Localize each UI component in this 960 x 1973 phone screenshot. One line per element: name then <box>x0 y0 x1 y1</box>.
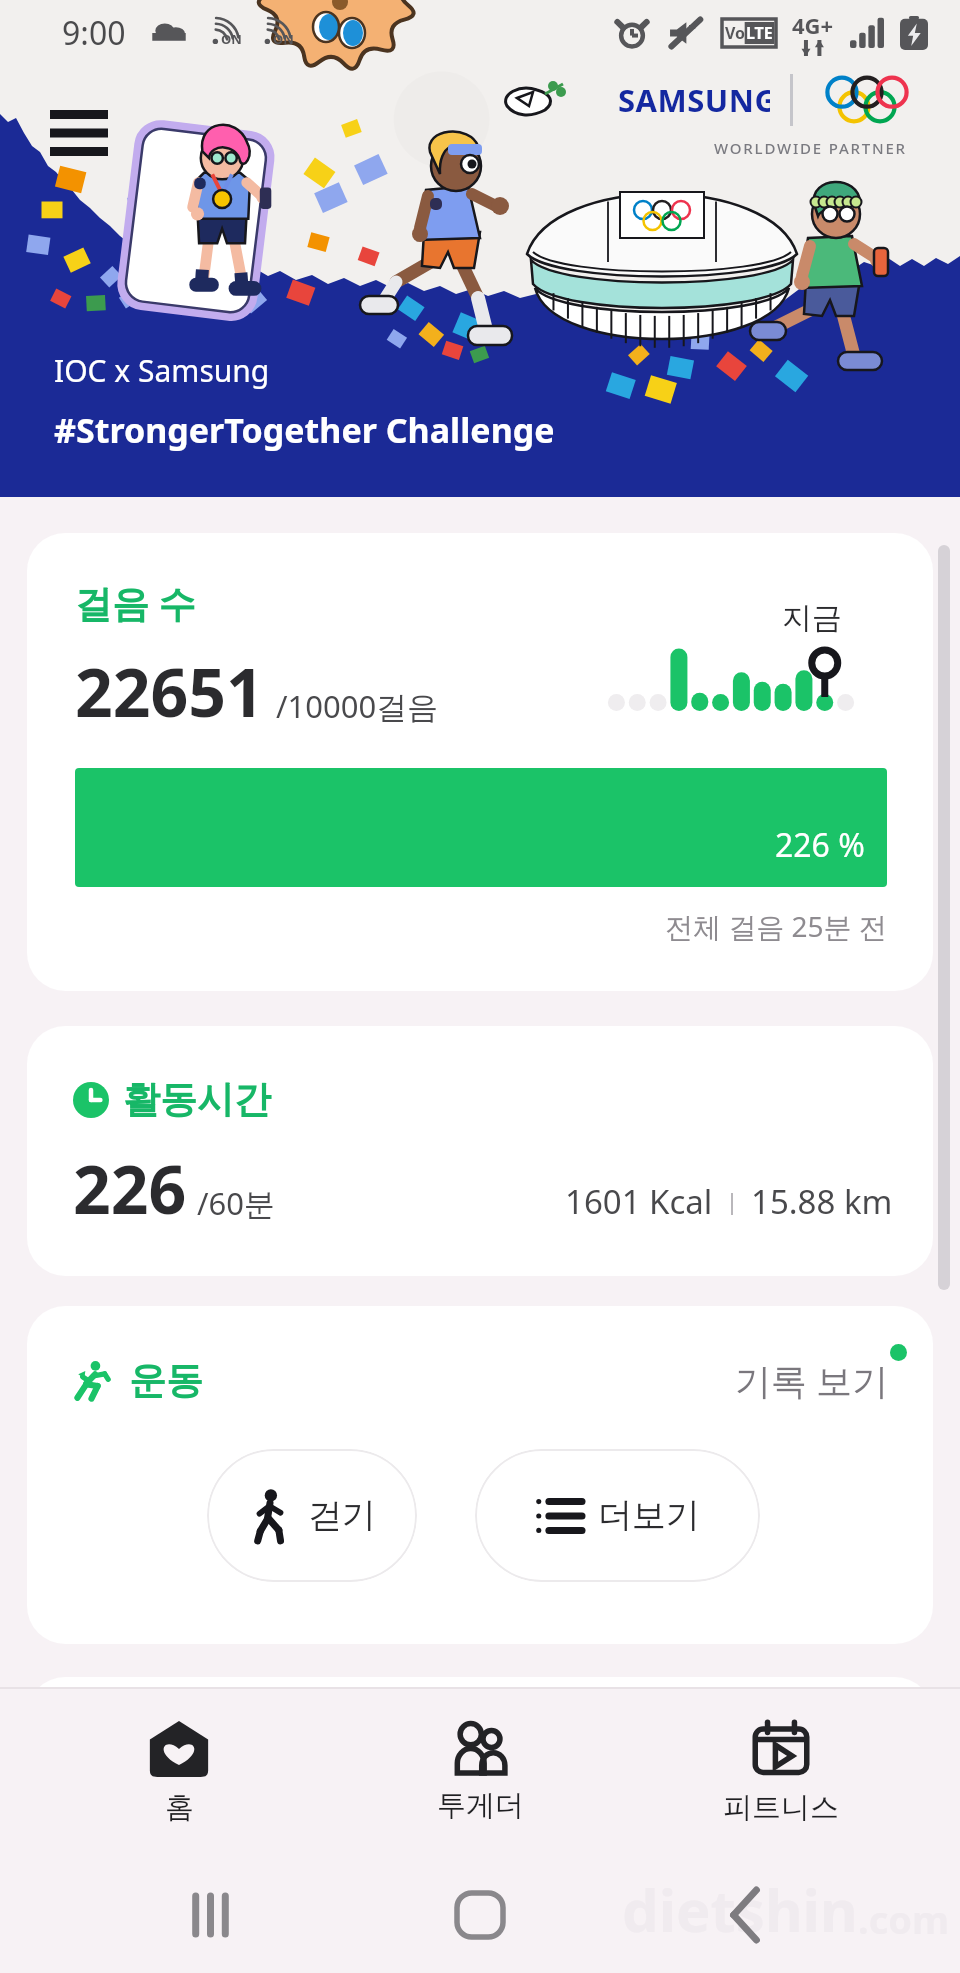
staticText: 226 <box>73 1143 187 1233</box>
staticText: 15.88 km <box>751 1179 893 1224</box>
staticText: 활동시간 <box>123 1076 271 1123</box>
staticText: 투게더 <box>437 1787 524 1824</box>
staticText: 홈 <box>165 1789 194 1826</box>
staticText: 피트니스 <box>723 1789 839 1826</box>
staticText: ON <box>273 30 294 48</box>
staticText: 22651 <box>75 646 264 736</box>
button[interactable]: 운동 <box>27 1306 933 1644</box>
button[interactable]: 기록 보기 <box>735 1356 893 1405</box>
staticText: 기록 보기 <box>735 1356 889 1405</box>
staticText: dietshin <box>622 1870 858 1949</box>
staticText: /60분 <box>197 1182 275 1224</box>
staticText: 걷기 <box>308 1494 376 1537</box>
staticText: 전체 걸음 25분 전 <box>665 907 887 945</box>
staticText: 더보기 <box>598 1494 700 1537</box>
button[interactable]: Menu <box>50 104 122 162</box>
staticText: SAMSUNG <box>618 79 770 121</box>
button[interactable]: Home <box>400 1857 560 1973</box>
staticText: 걸음 수 <box>75 577 196 628</box>
staticText: #StrongerTogether Challenge <box>54 407 555 453</box>
staticText: 4G+ <box>792 10 834 40</box>
staticText: Vo <box>725 22 746 44</box>
button[interactable]: Recents <box>130 1857 290 1973</box>
button[interactable]: 걷기 <box>207 1449 417 1582</box>
staticText: 운동 <box>129 1357 203 1404</box>
staticText: 1601 Kcal <box>565 1179 713 1224</box>
staticText: 9:00 <box>62 11 126 55</box>
button[interactable]: 투게더 <box>370 1689 590 1857</box>
button[interactable]: 더보기 <box>475 1449 760 1582</box>
staticText: WORLDWIDE PARTNER <box>714 138 907 158</box>
staticText: LTE <box>746 22 773 44</box>
staticText: IOC x Samsung <box>54 350 270 391</box>
button[interactable]: Back <box>665 1857 825 1973</box>
button[interactable]: 활동시간 <box>27 1026 933 1276</box>
staticText: /10000걸음 <box>276 685 439 727</box>
staticText: 226 % <box>775 823 865 867</box>
button[interactable]: 피트니스 <box>671 1689 891 1857</box>
button[interactable]: 홈 <box>69 1689 289 1857</box>
staticText: 지금 <box>782 599 842 637</box>
staticText: ON <box>221 30 242 48</box>
button[interactable]: 걸음 수 <box>27 533 933 991</box>
